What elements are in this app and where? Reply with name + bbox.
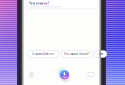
staticText: Задайте вопрос или выберите подсказку — [29, 6, 62, 7]
staticText: Кто самый белый? — [64, 52, 89, 56]
button[interactable]: Menu — [26, 69, 36, 79]
button[interactable]: Создать Шаблон — [27, 50, 59, 57]
staticText: Чем помочь? — [29, 2, 49, 5]
staticText: Создать Шаблон — [32, 52, 55, 56]
button[interactable]: Кто самый белый? — [61, 50, 93, 57]
button[interactable]: Keyboard — [86, 69, 96, 79]
staticText: Как — [99, 52, 103, 56]
button[interactable]: Как — [95, 50, 107, 57]
button[interactable]: Voice input — [56, 66, 73, 83]
